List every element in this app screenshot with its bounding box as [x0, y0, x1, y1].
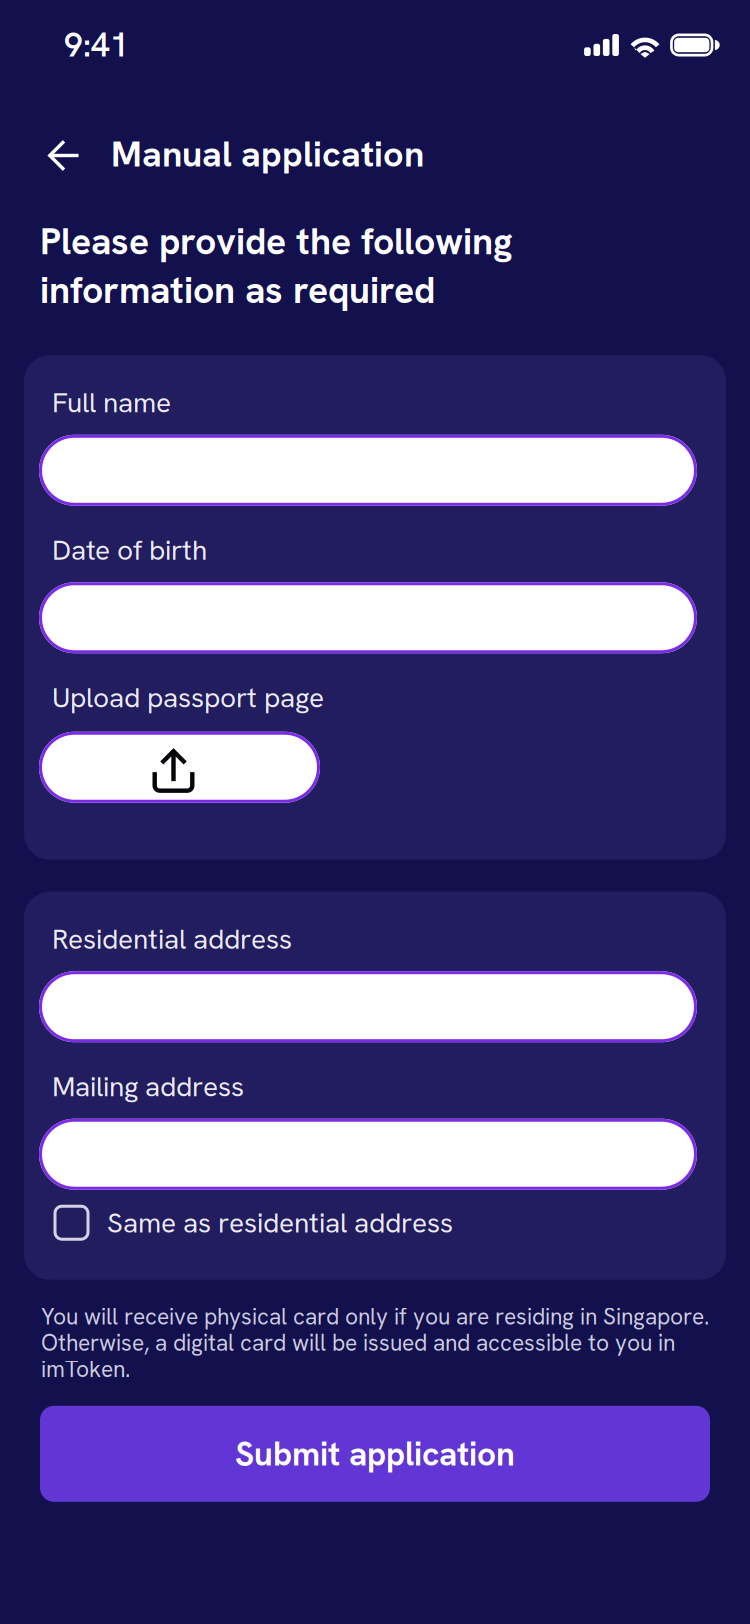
button[interactable]: Upload passport page: [39, 732, 320, 803]
button[interactable]: Same as residential address: [39, 1202, 697, 1244]
staticText: Date of birth: [52, 532, 207, 568]
button[interactable]: Submit application: [40, 1406, 710, 1502]
staticText: Submit application: [235, 1432, 515, 1475]
staticText: Mailing address: [52, 1068, 244, 1105]
staticText: Manual application: [111, 130, 424, 177]
staticText: 9:41: [64, 23, 129, 67]
staticText: Same as residential address: [107, 1204, 453, 1241]
staticText: Residential address: [52, 921, 292, 957]
staticText: Upload passport page: [52, 679, 324, 716]
staticText: You will receive physical card only if y…: [41, 1302, 709, 1384]
staticText: Please provide the following information…: [40, 217, 512, 314]
staticText: Full name: [52, 384, 171, 421]
button[interactable]: Back: [0, 122, 111, 186]
